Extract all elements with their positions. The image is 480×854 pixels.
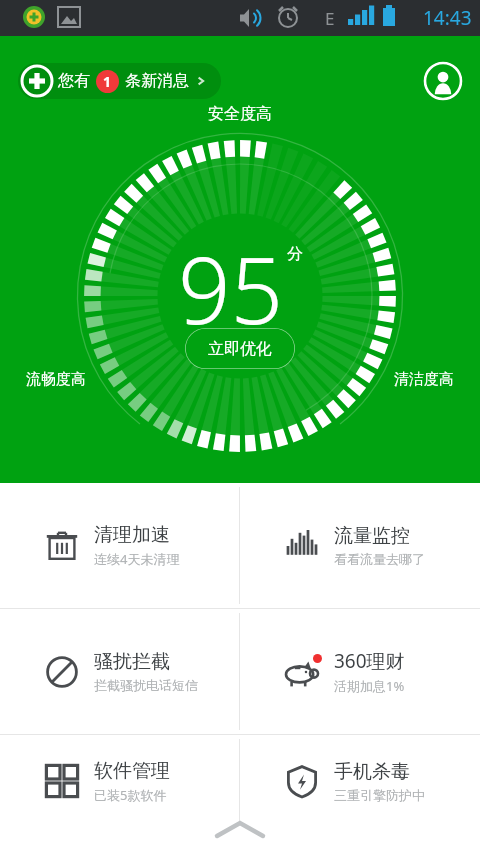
staticText: 流畅度高 [26, 370, 86, 389]
button[interactable]: 清理加速 [0, 483, 239, 608]
staticText: 三重引擎防护中 [334, 787, 425, 803]
staticText: 活期加息1% [334, 677, 405, 695]
staticText: 连续4天未清理 [94, 550, 180, 568]
button[interactable]: Expand [213, 818, 267, 840]
staticText: 分 [287, 244, 303, 264]
staticText: 360理财 [334, 648, 405, 674]
button[interactable]: 360理财 [240, 609, 480, 734]
button[interactable]: 软件管理 [0, 735, 239, 827]
button[interactable]: Account [423, 61, 463, 101]
staticText: 1 [103, 72, 112, 91]
button[interactable]: 手机杀毒 [240, 735, 480, 827]
button[interactable]: 您有 [18, 63, 221, 99]
staticText: 清洁度高 [394, 370, 454, 389]
staticText: 立即优化 [208, 339, 272, 359]
staticText: E [325, 7, 335, 30]
staticText: 95 [178, 226, 284, 351]
staticText: 看看流量去哪了 [334, 551, 425, 567]
button[interactable]: 立即优化 [185, 328, 295, 369]
staticText: 您有 [58, 71, 90, 91]
button[interactable]: 流量监控 [240, 483, 480, 608]
staticText: 手机杀毒 [334, 760, 410, 784]
staticText: 拦截骚扰电话短信 [94, 677, 198, 693]
staticText: 流量监控 [334, 524, 410, 548]
staticText: 骚扰拦截 [94, 650, 170, 674]
staticText: 安全度高 [208, 104, 272, 124]
staticText: 14:43 [423, 5, 472, 31]
staticText: 条新消息 [125, 71, 189, 91]
button[interactable]: 骚扰拦截 [0, 609, 239, 734]
staticText: 清理加速 [94, 523, 170, 547]
staticText: 已装5款软件 [94, 786, 167, 804]
staticText: 软件管理 [94, 759, 170, 783]
